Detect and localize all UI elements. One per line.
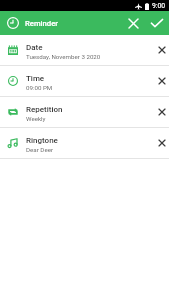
button[interactable]: Clear Date <box>155 35 169 65</box>
staticText: Reminder <box>25 19 59 28</box>
button[interactable]: Clear Repetition <box>155 97 169 127</box>
button[interactable]: Clear Time <box>155 66 169 96</box>
button[interactable]: Date <box>0 35 169 65</box>
staticText: Repetition <box>26 105 63 114</box>
staticText: 09:00 PM <box>26 84 53 91</box>
button[interactable]: Repetition <box>0 97 169 127</box>
staticText: Dear Deer <box>26 146 54 153</box>
button[interactable]: Reminder <box>0 17 59 29</box>
staticText: Tuesday, November 3 2020 <box>26 53 101 60</box>
button[interactable]: Save <box>145 11 169 35</box>
staticText: Ringtone <box>26 136 58 145</box>
staticText: Time <box>26 74 45 83</box>
button[interactable]: Ringtone <box>0 128 169 158</box>
staticText: Date <box>26 43 43 52</box>
button[interactable]: Cancel <box>122 11 145 35</box>
button[interactable]: Clear Ringtone <box>155 128 169 158</box>
staticText: Weekly <box>26 115 46 122</box>
staticText: 9:00 <box>152 2 166 10</box>
button[interactable]: Time <box>0 66 169 96</box>
